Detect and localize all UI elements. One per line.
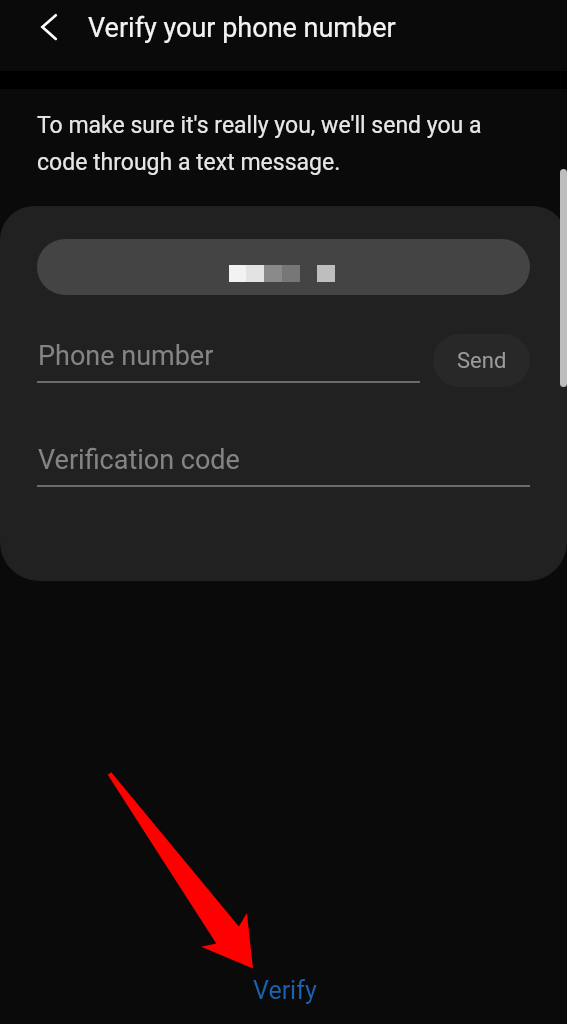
- button[interactable]: Verify your phone number: [88, 7, 396, 47]
- staticText: To make sure it's really you, we'll send…: [37, 112, 482, 175]
- button[interactable]: Verification code: [20, 431, 530, 491]
- button[interactable]: Send: [433, 334, 530, 387]
- button[interactable]: Phone number: [20, 328, 420, 388]
- staticText: Send: [457, 348, 507, 374]
- staticText: Phone number: [38, 340, 214, 372]
- staticText: Verify: [253, 976, 317, 1005]
- staticText: Verification code: [38, 444, 240, 476]
- button[interactable]: Verify: [245, 970, 325, 1014]
- staticText: Verify your phone number: [88, 12, 396, 44]
- button[interactable]: Select country code: [37, 239, 530, 295]
- button[interactable]: Back: [24, 7, 64, 47]
